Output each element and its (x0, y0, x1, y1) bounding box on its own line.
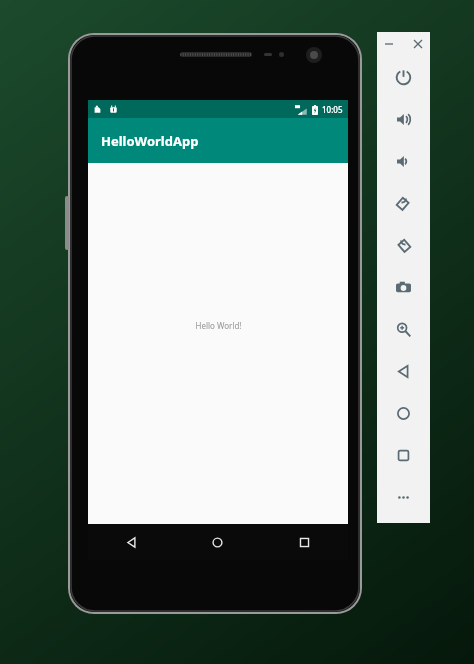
button[interactable]: Close (410, 36, 426, 52)
staticText: HelloWorldApp (101, 132, 199, 150)
button[interactable]: Home (377, 392, 430, 434)
button[interactable]: Recent apps (377, 434, 430, 476)
button[interactable]: Power (377, 56, 430, 98)
button[interactable]: Minimize (381, 36, 397, 52)
button[interactable]: Back (88, 524, 174, 560)
button[interactable]: Volume down (377, 140, 430, 182)
button[interactable]: Recent apps (261, 524, 348, 560)
button[interactable]: Take screenshot (377, 266, 430, 308)
button[interactable]: Volume up (377, 98, 430, 140)
button[interactable]: Rotate left (377, 182, 430, 224)
button[interactable]: Back (377, 350, 430, 392)
button[interactable]: Home (174, 524, 261, 560)
button[interactable]: More (377, 476, 430, 518)
staticText: 10:05 (322, 104, 343, 115)
button[interactable]: Zoom (377, 308, 430, 350)
staticText: Hello World! (195, 320, 242, 331)
button[interactable]: HelloWorldApp (88, 118, 348, 163)
button[interactable]: Rotate right (377, 224, 430, 266)
